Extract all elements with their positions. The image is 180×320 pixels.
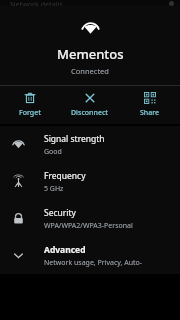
staticText: Network usage, Privacy, Auto-connect, Ad…	[44, 258, 170, 268]
button[interactable]: Signal strength	[0, 126, 180, 163]
staticText: Disconnect	[71, 108, 109, 118]
staticText: 5 GHz	[44, 184, 64, 194]
staticText: Mementos	[57, 45, 124, 63]
button[interactable]: Forget	[0, 88, 60, 122]
staticText: Share	[140, 108, 160, 118]
button[interactable]: Frequency	[0, 163, 180, 200]
staticText: Connected	[71, 66, 109, 76]
button[interactable]: Disconnect	[60, 88, 120, 122]
staticText: Forget	[19, 108, 41, 118]
staticText: Frequency	[44, 170, 86, 182]
staticText: Security	[44, 207, 76, 219]
staticText: Signal strength	[44, 133, 105, 145]
button[interactable]: Share	[120, 88, 180, 122]
button[interactable]: Security	[0, 200, 180, 237]
staticText: WPA/WPA2/WPA3-Personal	[44, 221, 133, 231]
staticText: Network details	[10, 0, 63, 6]
button[interactable]: Advanced	[0, 237, 180, 274]
staticText: Good	[44, 147, 62, 157]
staticText: Advanced	[44, 244, 86, 256]
